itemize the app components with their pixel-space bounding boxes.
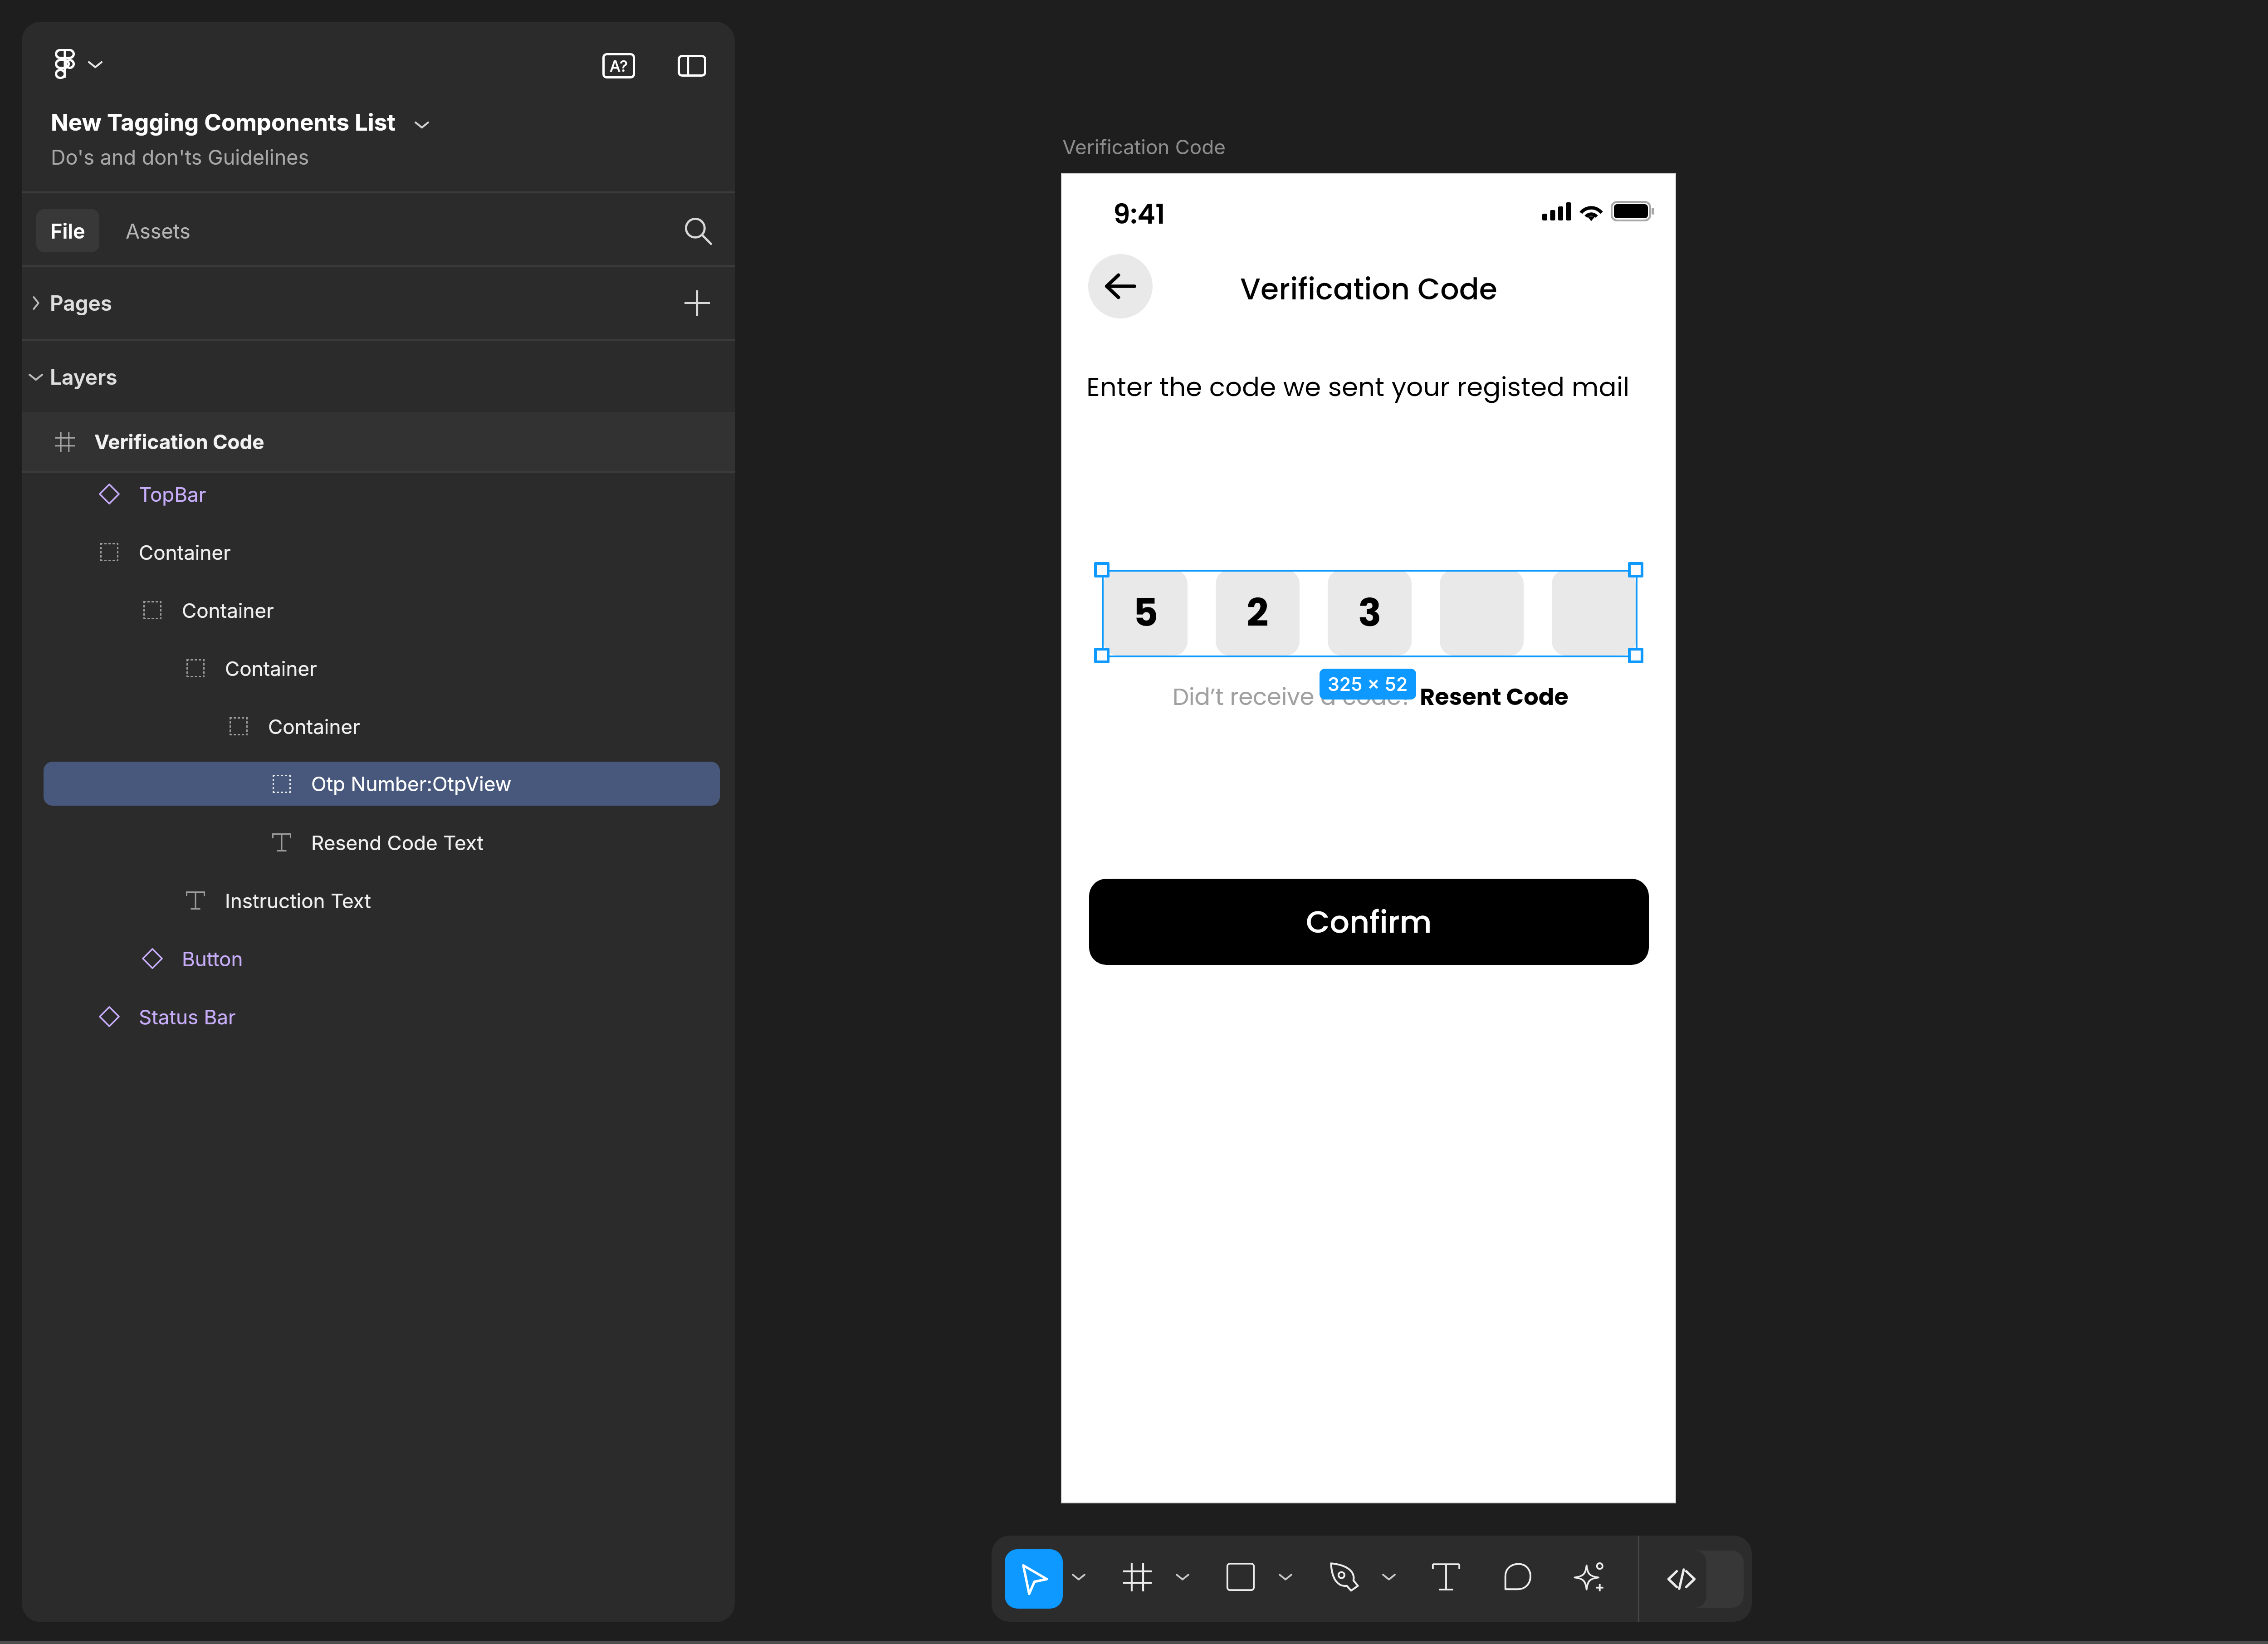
- staticText: TopBar: [139, 482, 206, 506]
- staticText: Verification Code: [1062, 135, 1226, 159]
- button[interactable]: Pages: [22, 267, 735, 339]
- button[interactable]: [1440, 570, 1524, 656]
- button[interactable]: Toggle panel: [670, 44, 714, 88]
- button[interactable]: Move tool options: [1051, 1549, 1106, 1605]
- staticText: Container: [182, 598, 274, 622]
- button[interactable]: Layers: [22, 341, 735, 413]
- button[interactable]: Actions: [1561, 1549, 1617, 1605]
- staticText: Confirm: [1306, 900, 1432, 944]
- staticText: 325 × 52: [1328, 673, 1408, 695]
- button[interactable]: Container: [22, 697, 735, 755]
- staticText: Pages: [50, 290, 112, 316]
- staticText: Layers: [50, 364, 117, 390]
- button[interactable]: Container: [22, 639, 735, 697]
- staticText: Button: [182, 947, 243, 971]
- button[interactable]: Pen tool: [1317, 1549, 1372, 1605]
- staticText: Container: [268, 714, 360, 739]
- button[interactable]: Back: [1088, 254, 1153, 318]
- button[interactable]: File: [36, 209, 99, 252]
- staticText: 5: [1133, 586, 1158, 640]
- button[interactable]: Assets: [112, 209, 203, 252]
- button[interactable]: Frame tool options: [1155, 1549, 1210, 1605]
- button[interactable]: Pen tool options: [1361, 1549, 1417, 1605]
- staticText: File: [50, 219, 85, 243]
- button[interactable]: Search: [676, 209, 719, 252]
- staticText: New Tagging Components List: [51, 108, 396, 137]
- button[interactable]: [1552, 570, 1636, 656]
- staticText: Status Bar: [139, 1005, 236, 1029]
- staticText: A?: [610, 57, 628, 75]
- staticText: 9:41: [1113, 195, 1165, 233]
- button[interactable]: Confirm: [1089, 879, 1649, 965]
- button[interactable]: Add page: [670, 267, 724, 339]
- button[interactable]: Otp Number:OtpView: [44, 762, 720, 806]
- staticText: Do's and don'ts Guidelines: [51, 145, 309, 169]
- staticText: Assets: [126, 219, 191, 243]
- button[interactable]: Container: [22, 581, 735, 639]
- button[interactable]: TopBar: [22, 465, 735, 523]
- button[interactable]: Shape tool options: [1258, 1549, 1313, 1605]
- button[interactable]: Resent Code: [1420, 680, 1569, 713]
- button[interactable]: Resend Code Text: [22, 813, 735, 871]
- button[interactable]: Shape tool: [1213, 1549, 1268, 1605]
- button[interactable]: 5: [1104, 570, 1188, 656]
- button[interactable]: Accessibility check: [597, 44, 640, 88]
- staticText: 2: [1246, 586, 1269, 640]
- staticText: Enter the code we sent your registed mai…: [1086, 368, 1630, 405]
- button[interactable]: Add comment: [1490, 1549, 1545, 1605]
- staticText: Verification Code: [94, 430, 264, 454]
- staticText: Verification Code: [1240, 269, 1497, 305]
- button[interactable]: Text tool: [1418, 1549, 1474, 1605]
- button[interactable]: Button: [22, 930, 735, 988]
- staticText: Resend Code Text: [311, 831, 484, 855]
- button[interactable]: Verification Code: [22, 412, 735, 471]
- button[interactable]: Status Bar: [22, 988, 735, 1046]
- staticText: Instruction Text: [225, 889, 371, 913]
- staticText: Container: [225, 656, 317, 680]
- staticText: Otp Number:OtpView: [311, 772, 512, 796]
- staticText: 3: [1358, 586, 1382, 640]
- button[interactable]: Container: [22, 523, 735, 581]
- button[interactable]: Dev mode: [1657, 1551, 1744, 1608]
- staticText: Container: [139, 540, 231, 564]
- staticText: Did’t receive a code?: [1173, 680, 1420, 713]
- button[interactable]: Move tool: [1005, 1549, 1063, 1609]
- button[interactable]: 2: [1216, 570, 1300, 656]
- button[interactable]: Frame tool: [1110, 1549, 1165, 1605]
- button[interactable]: Figma menu: [48, 47, 82, 81]
- button[interactable]: Instruction Text: [22, 871, 735, 930]
- button[interactable]: 3: [1328, 570, 1412, 656]
